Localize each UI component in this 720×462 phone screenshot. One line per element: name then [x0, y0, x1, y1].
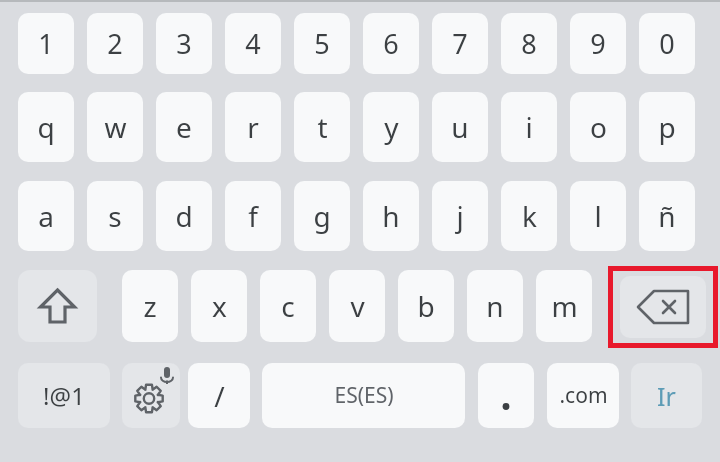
button[interactable]: n	[467, 270, 523, 342]
button[interactable]: Shift	[18, 270, 97, 342]
button[interactable]: d	[156, 181, 212, 251]
staticText: c	[281, 287, 295, 325]
button[interactable]: 8	[501, 13, 557, 74]
staticText: x	[212, 287, 227, 325]
staticText: o	[590, 108, 607, 146]
button[interactable]: Settings and voice input	[122, 363, 180, 428]
staticText: 2	[107, 25, 123, 62]
button[interactable]: Period	[478, 363, 534, 428]
button[interactable]: c	[260, 270, 316, 342]
staticText: b	[417, 287, 435, 325]
staticText: r	[247, 108, 259, 146]
button[interactable]: 4	[225, 13, 281, 74]
staticText: ñ	[658, 197, 676, 235]
staticText: z	[143, 287, 157, 325]
staticText: l	[594, 197, 602, 235]
button[interactable]: w	[87, 92, 143, 162]
staticText: p	[658, 108, 676, 146]
button[interactable]: 2	[87, 13, 143, 74]
staticText: 9	[590, 25, 606, 62]
staticText: t	[317, 108, 328, 146]
staticText: h	[382, 197, 400, 235]
staticText: 8	[521, 25, 537, 62]
button[interactable]: /	[188, 363, 250, 428]
button[interactable]: 5	[294, 13, 350, 74]
staticText: u	[451, 108, 469, 146]
button[interactable]: 1	[18, 13, 74, 74]
button[interactable]: ES(ES)	[262, 363, 465, 428]
button[interactable]: 7	[432, 13, 488, 74]
staticText: 5	[314, 25, 330, 62]
staticText: !@1	[43, 379, 85, 412]
button[interactable]: k	[501, 181, 557, 251]
button[interactable]: t	[294, 92, 350, 162]
staticText: 0	[659, 25, 675, 62]
button[interactable]: y	[363, 92, 419, 162]
button[interactable]: Backspace	[620, 276, 706, 338]
button[interactable]: l	[570, 181, 626, 251]
button[interactable]: h	[363, 181, 419, 251]
button[interactable]: 3	[156, 13, 212, 74]
button[interactable]: .com	[547, 363, 619, 428]
staticText: 6	[383, 25, 399, 62]
staticText: f	[248, 197, 258, 235]
staticText: d	[175, 197, 193, 235]
staticText: g	[313, 197, 331, 235]
button[interactable]: m	[536, 270, 592, 342]
staticText: j	[456, 197, 464, 235]
button[interactable]: e	[156, 92, 212, 162]
staticText: 4	[245, 25, 261, 62]
button[interactable]: !@1	[18, 363, 110, 428]
button[interactable]: ñ	[639, 181, 695, 251]
button[interactable]: 6	[363, 13, 419, 74]
button[interactable]: q	[18, 92, 74, 162]
staticText: k	[522, 197, 537, 235]
button[interactable]: p	[639, 92, 695, 162]
staticText: y	[384, 108, 399, 146]
staticText: v	[350, 287, 365, 325]
staticText: n	[486, 287, 504, 325]
staticText: w	[104, 108, 127, 146]
button[interactable]: 9	[570, 13, 626, 74]
button[interactable]: b	[398, 270, 454, 342]
staticText: ES(ES)	[334, 381, 394, 410]
button[interactable]: j	[432, 181, 488, 251]
staticText: a	[38, 197, 54, 235]
staticText: /	[214, 377, 225, 415]
button[interactable]: g	[294, 181, 350, 251]
button[interactable]: r	[225, 92, 281, 162]
button[interactable]: Ir	[631, 363, 702, 428]
staticText: 7	[452, 25, 468, 62]
staticText: q	[37, 108, 55, 146]
staticText: e	[176, 108, 192, 146]
staticText: i	[525, 108, 533, 146]
button[interactable]: o	[570, 92, 626, 162]
button[interactable]: z	[122, 270, 178, 342]
button[interactable]: u	[432, 92, 488, 162]
button[interactable]: 0	[639, 13, 695, 74]
button[interactable]: a	[18, 181, 74, 251]
staticText: Ir	[657, 379, 676, 413]
button[interactable]: f	[225, 181, 281, 251]
staticText: m	[551, 287, 578, 325]
staticText: .com	[559, 381, 608, 410]
button[interactable]: i	[501, 92, 557, 162]
staticText: s	[108, 197, 122, 235]
staticText: 3	[176, 25, 192, 62]
button[interactable]: v	[329, 270, 385, 342]
button[interactable]: s	[87, 181, 143, 251]
button[interactable]: x	[191, 270, 247, 342]
staticText: 1	[38, 25, 54, 62]
